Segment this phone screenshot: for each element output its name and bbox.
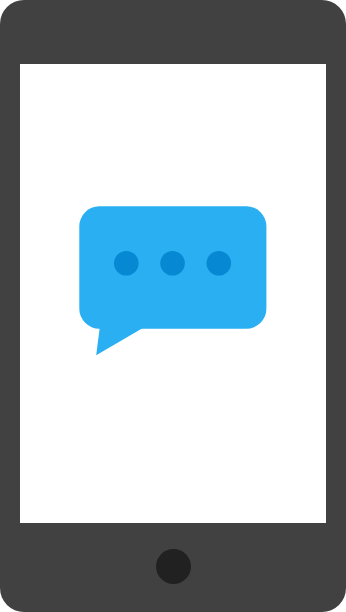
button[interactable]: New message bbox=[20, 64, 326, 523]
button[interactable]: Home bbox=[156, 549, 191, 584]
other: Smartphone illustration bbox=[0, 0, 346, 612]
